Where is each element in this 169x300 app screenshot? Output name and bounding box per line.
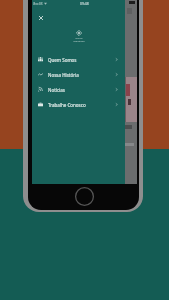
staticText: Quem Somos [48,57,77,63]
button[interactable]: Close menu [35,12,47,24]
staticText: SANTA COLOMBA [73,37,85,43]
staticText: Vivo BR [33,2,43,6]
button[interactable]: Nossa História [32,67,125,82]
button[interactable]: Notícias [32,82,125,97]
button[interactable]: Trabalhe Conosco [32,97,125,112]
staticText: Trabalhe Conosco [48,102,86,108]
staticText: 09:48 [80,1,89,6]
staticText: Nossa História [48,72,79,78]
button[interactable]: Quem Somos [32,52,125,67]
staticText: Notícias [48,87,65,93]
